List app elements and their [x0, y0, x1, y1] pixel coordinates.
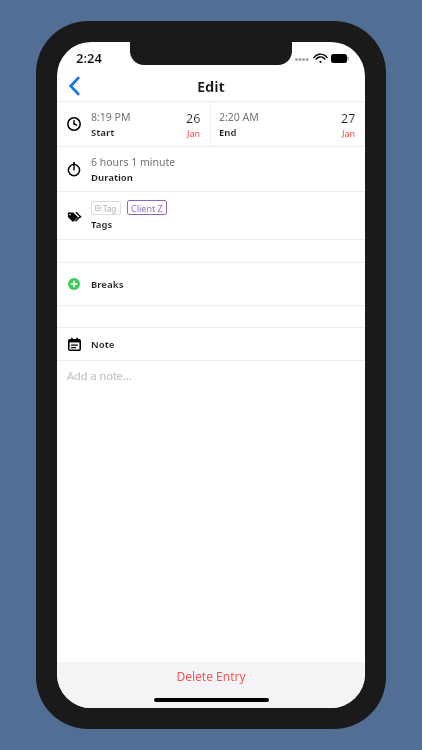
staticText: Edit	[197, 76, 225, 96]
staticText: 2:20 AM	[219, 110, 259, 124]
button[interactable]: Note	[57, 328, 365, 360]
staticText: Jan	[342, 127, 356, 139]
staticText: Tags	[91, 218, 113, 231]
staticText: Tag	[103, 203, 117, 214]
staticText: Start	[91, 126, 115, 139]
button[interactable]: 2:20 AM	[211, 102, 365, 146]
button[interactable]: Breaks	[57, 263, 365, 305]
button[interactable]: Delete Entry	[57, 662, 365, 690]
staticText: End	[219, 126, 237, 139]
staticText: 27	[341, 110, 356, 127]
staticText: Breaks	[91, 278, 124, 291]
staticText: Delete Entry	[176, 668, 246, 684]
staticText: Client Z	[131, 202, 163, 214]
staticText: Add a note...	[67, 368, 132, 383]
button[interactable]: Client Z	[127, 200, 167, 215]
staticText: 6 hours 1 minute	[91, 155, 176, 169]
staticText: Duration	[91, 171, 133, 184]
button[interactable]: Tag	[91, 201, 121, 215]
staticText: 2:24	[76, 49, 102, 67]
staticText: 26	[186, 110, 201, 127]
button[interactable]: Tag	[57, 192, 365, 239]
button[interactable]: 8:19 PM	[57, 102, 210, 146]
staticText: Note	[91, 338, 115, 351]
button[interactable]: Back	[57, 71, 91, 101]
staticText: 8:19 PM	[91, 110, 131, 124]
button[interactable]: 6 hours 1 minute	[57, 147, 365, 191]
staticText: Jan	[187, 127, 201, 139]
